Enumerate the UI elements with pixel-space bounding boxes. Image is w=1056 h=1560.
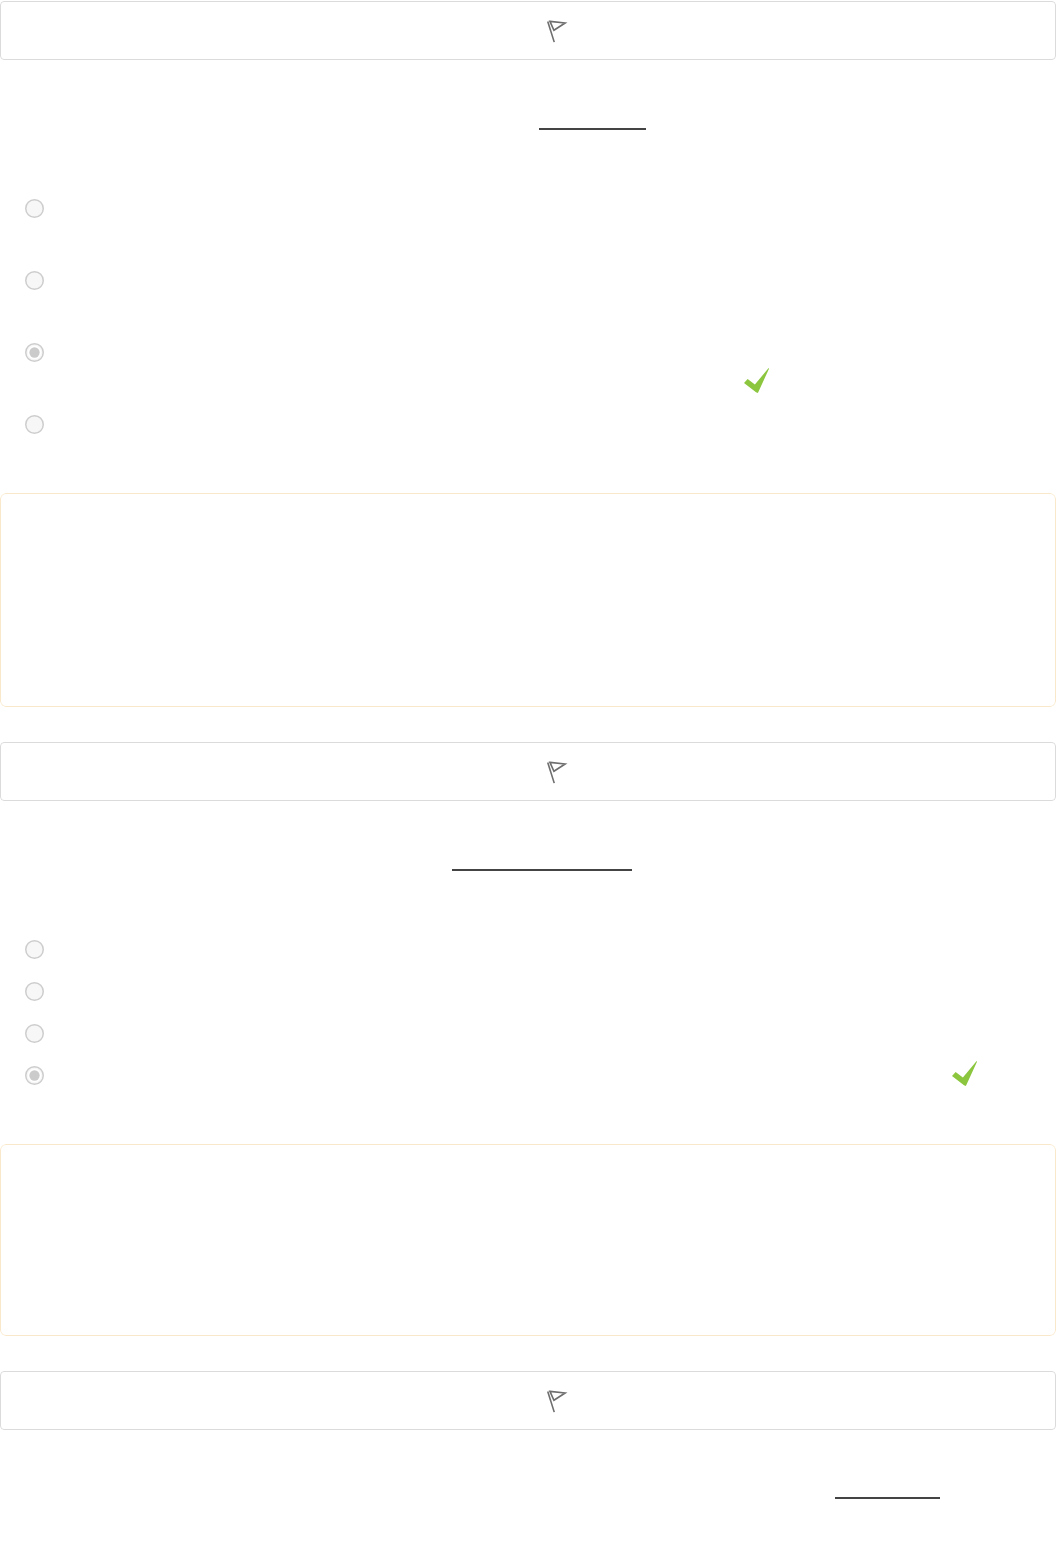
button[interactable]: Report this question xyxy=(0,1,1056,60)
button[interactable]: Question 1 link xyxy=(539,110,646,130)
button[interactable]: Question 2 link xyxy=(452,851,632,871)
button[interactable]: Answer explanation xyxy=(0,1144,1056,1336)
button[interactable]: Answer option 4, selected xyxy=(0,1066,1056,1085)
button[interactable]: Report this question xyxy=(0,1371,1056,1430)
button[interactable]: Answer option 3, selected xyxy=(0,343,1056,362)
button[interactable]: Answer explanation xyxy=(0,493,1056,707)
button[interactable]: Question 3 link xyxy=(835,1479,940,1499)
button[interactable]: Report this question xyxy=(0,742,1056,801)
